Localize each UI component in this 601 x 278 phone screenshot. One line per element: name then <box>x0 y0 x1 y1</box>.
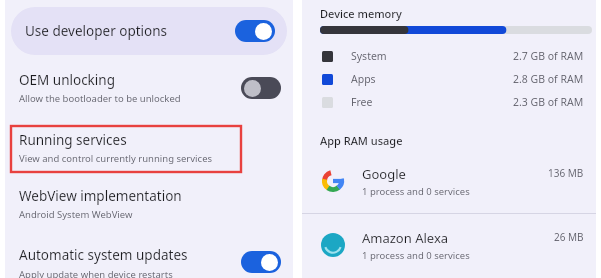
button[interactable]: Use developer options <box>11 7 287 55</box>
staticText: Device memory <box>320 6 402 21</box>
button[interactable]: Free <box>302 92 596 112</box>
button[interactable]: Automatic system updates <box>5 243 293 278</box>
staticText: Apps <box>351 72 513 86</box>
button[interactable]: OEM unlocking <box>5 63 293 113</box>
staticText: App RAM usage <box>320 133 403 148</box>
staticText: 26 MB <box>554 230 584 244</box>
staticText: 2.7 GB of RAM <box>513 49 584 63</box>
button[interactable]: Amazon Alexa <box>302 222 596 268</box>
staticText: 1 process and 0 services <box>362 249 470 262</box>
staticText: WebView implementation <box>19 187 182 205</box>
button[interactable]: Apps <box>302 69 596 89</box>
staticText: Apply update when device restarts <box>19 268 173 278</box>
button[interactable]: Toggle on <box>235 20 275 42</box>
staticText: OEM unlocking <box>19 71 115 89</box>
button[interactable]: WebView implementation <box>5 184 293 232</box>
staticText: Use developer options <box>25 22 235 40</box>
button[interactable]: System <box>302 46 596 66</box>
staticText: 136 MB <box>548 166 584 180</box>
staticText: View and control currently running servi… <box>19 152 213 165</box>
staticText: Google <box>362 165 406 183</box>
staticText: Automatic system updates <box>19 246 188 264</box>
staticText: 2.3 GB of RAM <box>513 95 584 109</box>
button[interactable]: Toggle off <box>241 77 281 99</box>
button[interactable]: Google <box>302 158 596 204</box>
staticText: Allow the bootloader to be unlocked <box>19 92 181 105</box>
staticText: System <box>351 49 513 63</box>
staticText: Running services <box>19 131 127 149</box>
button[interactable]: Toggle on <box>241 251 281 273</box>
button[interactable]: Running services <box>11 126 241 172</box>
staticText: Free <box>351 95 513 109</box>
staticText: Amazon Alexa <box>362 229 449 247</box>
staticText: 1 process and 0 services <box>362 185 470 198</box>
staticText: 2.8 GB of RAM <box>513 72 584 86</box>
staticText: Android System WebView <box>19 208 133 221</box>
